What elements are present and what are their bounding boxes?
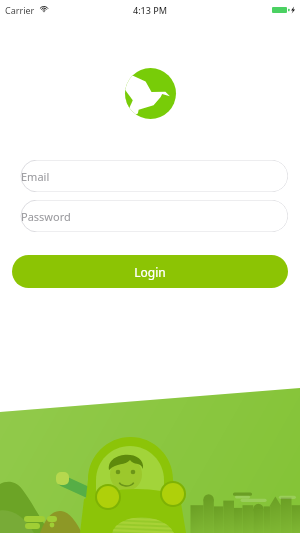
- button[interactable]: Login: [12, 255, 288, 288]
- staticText: Email: [21, 169, 50, 184]
- staticText: Password: [21, 209, 71, 224]
- staticText: Login: [134, 264, 166, 280]
- button[interactable]: Password: [12, 200, 288, 232]
- staticText: Carrier: [5, 4, 35, 16]
- staticText: 4:13 PM: [133, 4, 167, 16]
- button[interactable]: Email: [12, 160, 288, 192]
